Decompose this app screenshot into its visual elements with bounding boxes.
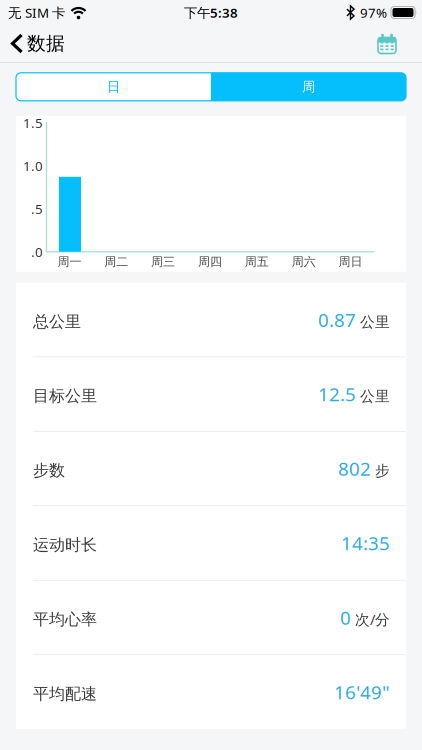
button[interactable] (377, 33, 422, 53)
staticText: 下午5:38 (184, 4, 238, 21)
button[interactable]: 周 (211, 73, 406, 101)
staticText: 无 SIM 卡 (8, 4, 65, 21)
staticText: 周六 (292, 254, 316, 269)
staticText: 1.0 (23, 157, 43, 175)
button[interactable]: 日 (16, 73, 211, 101)
staticText: 运动时长 (33, 535, 97, 555)
staticText: 日 (107, 79, 120, 95)
staticText: 目标公里 (33, 386, 97, 406)
staticText: 周三 (151, 254, 175, 269)
staticText: 周一 (57, 254, 81, 269)
button[interactable]: 总公里 (16, 283, 406, 357)
staticText: 周日 (339, 254, 363, 269)
staticText: 14:35 (341, 531, 390, 555)
staticText: 总公里 (33, 312, 81, 331)
button[interactable]: 平均配速 (16, 655, 406, 729)
button[interactable]: 步数 (16, 432, 406, 505)
staticText: 平均心率 (33, 610, 97, 629)
staticText: .0 (31, 243, 43, 261)
button[interactable]: 平均心率 (16, 581, 406, 654)
staticText: 公里 (356, 313, 390, 331)
staticText: 16'49" (334, 679, 390, 704)
staticText: 周四 (198, 254, 222, 269)
staticText: 平均配速 (33, 684, 97, 704)
staticText: 公里 (356, 387, 390, 405)
staticText: 802 (338, 456, 371, 481)
staticText: 数据 (27, 32, 65, 55)
staticText: 0.87 (318, 307, 356, 332)
button[interactable]: 数据 (0, 32, 65, 55)
staticText: 周五 (245, 254, 269, 269)
button[interactable]: 目标公里 (16, 357, 406, 431)
button[interactable]: 运动时长 (16, 506, 406, 580)
staticText: 12.5 (318, 382, 356, 406)
staticText: 次/分 (351, 609, 390, 629)
staticText: 步数 (33, 461, 65, 480)
staticText: 0 (340, 605, 351, 630)
staticText: .5 (31, 200, 43, 218)
staticText: 周 (302, 79, 315, 95)
staticText: 步 (371, 462, 390, 480)
staticText: 97% (360, 4, 387, 21)
staticText: 周二 (104, 254, 128, 269)
staticText: 1.5 (23, 114, 43, 132)
